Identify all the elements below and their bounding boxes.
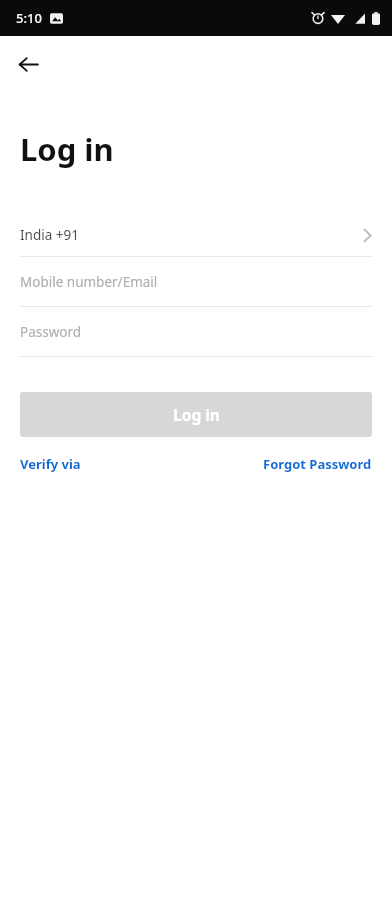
button[interactable]: India +91 (0, 214, 392, 256)
staticText: Verify via (20, 455, 81, 473)
button[interactable]: Log in (20, 392, 372, 437)
button[interactable]: Verify via (20, 451, 81, 477)
staticText: 5:10 (16, 9, 42, 27)
staticText: India +91 (20, 226, 79, 244)
staticText: Log in (20, 128, 114, 170)
staticText: Forgot Password (263, 455, 372, 473)
button[interactable]: Forgot Password (263, 451, 372, 477)
button[interactable]: Password (0, 307, 392, 356)
staticText: Password (20, 323, 82, 341)
staticText: Log in (173, 404, 220, 425)
staticText: Mobile number/Email (20, 273, 158, 291)
button[interactable]: Mobile number/Email (0, 257, 392, 306)
button[interactable]: Back (8, 44, 48, 84)
